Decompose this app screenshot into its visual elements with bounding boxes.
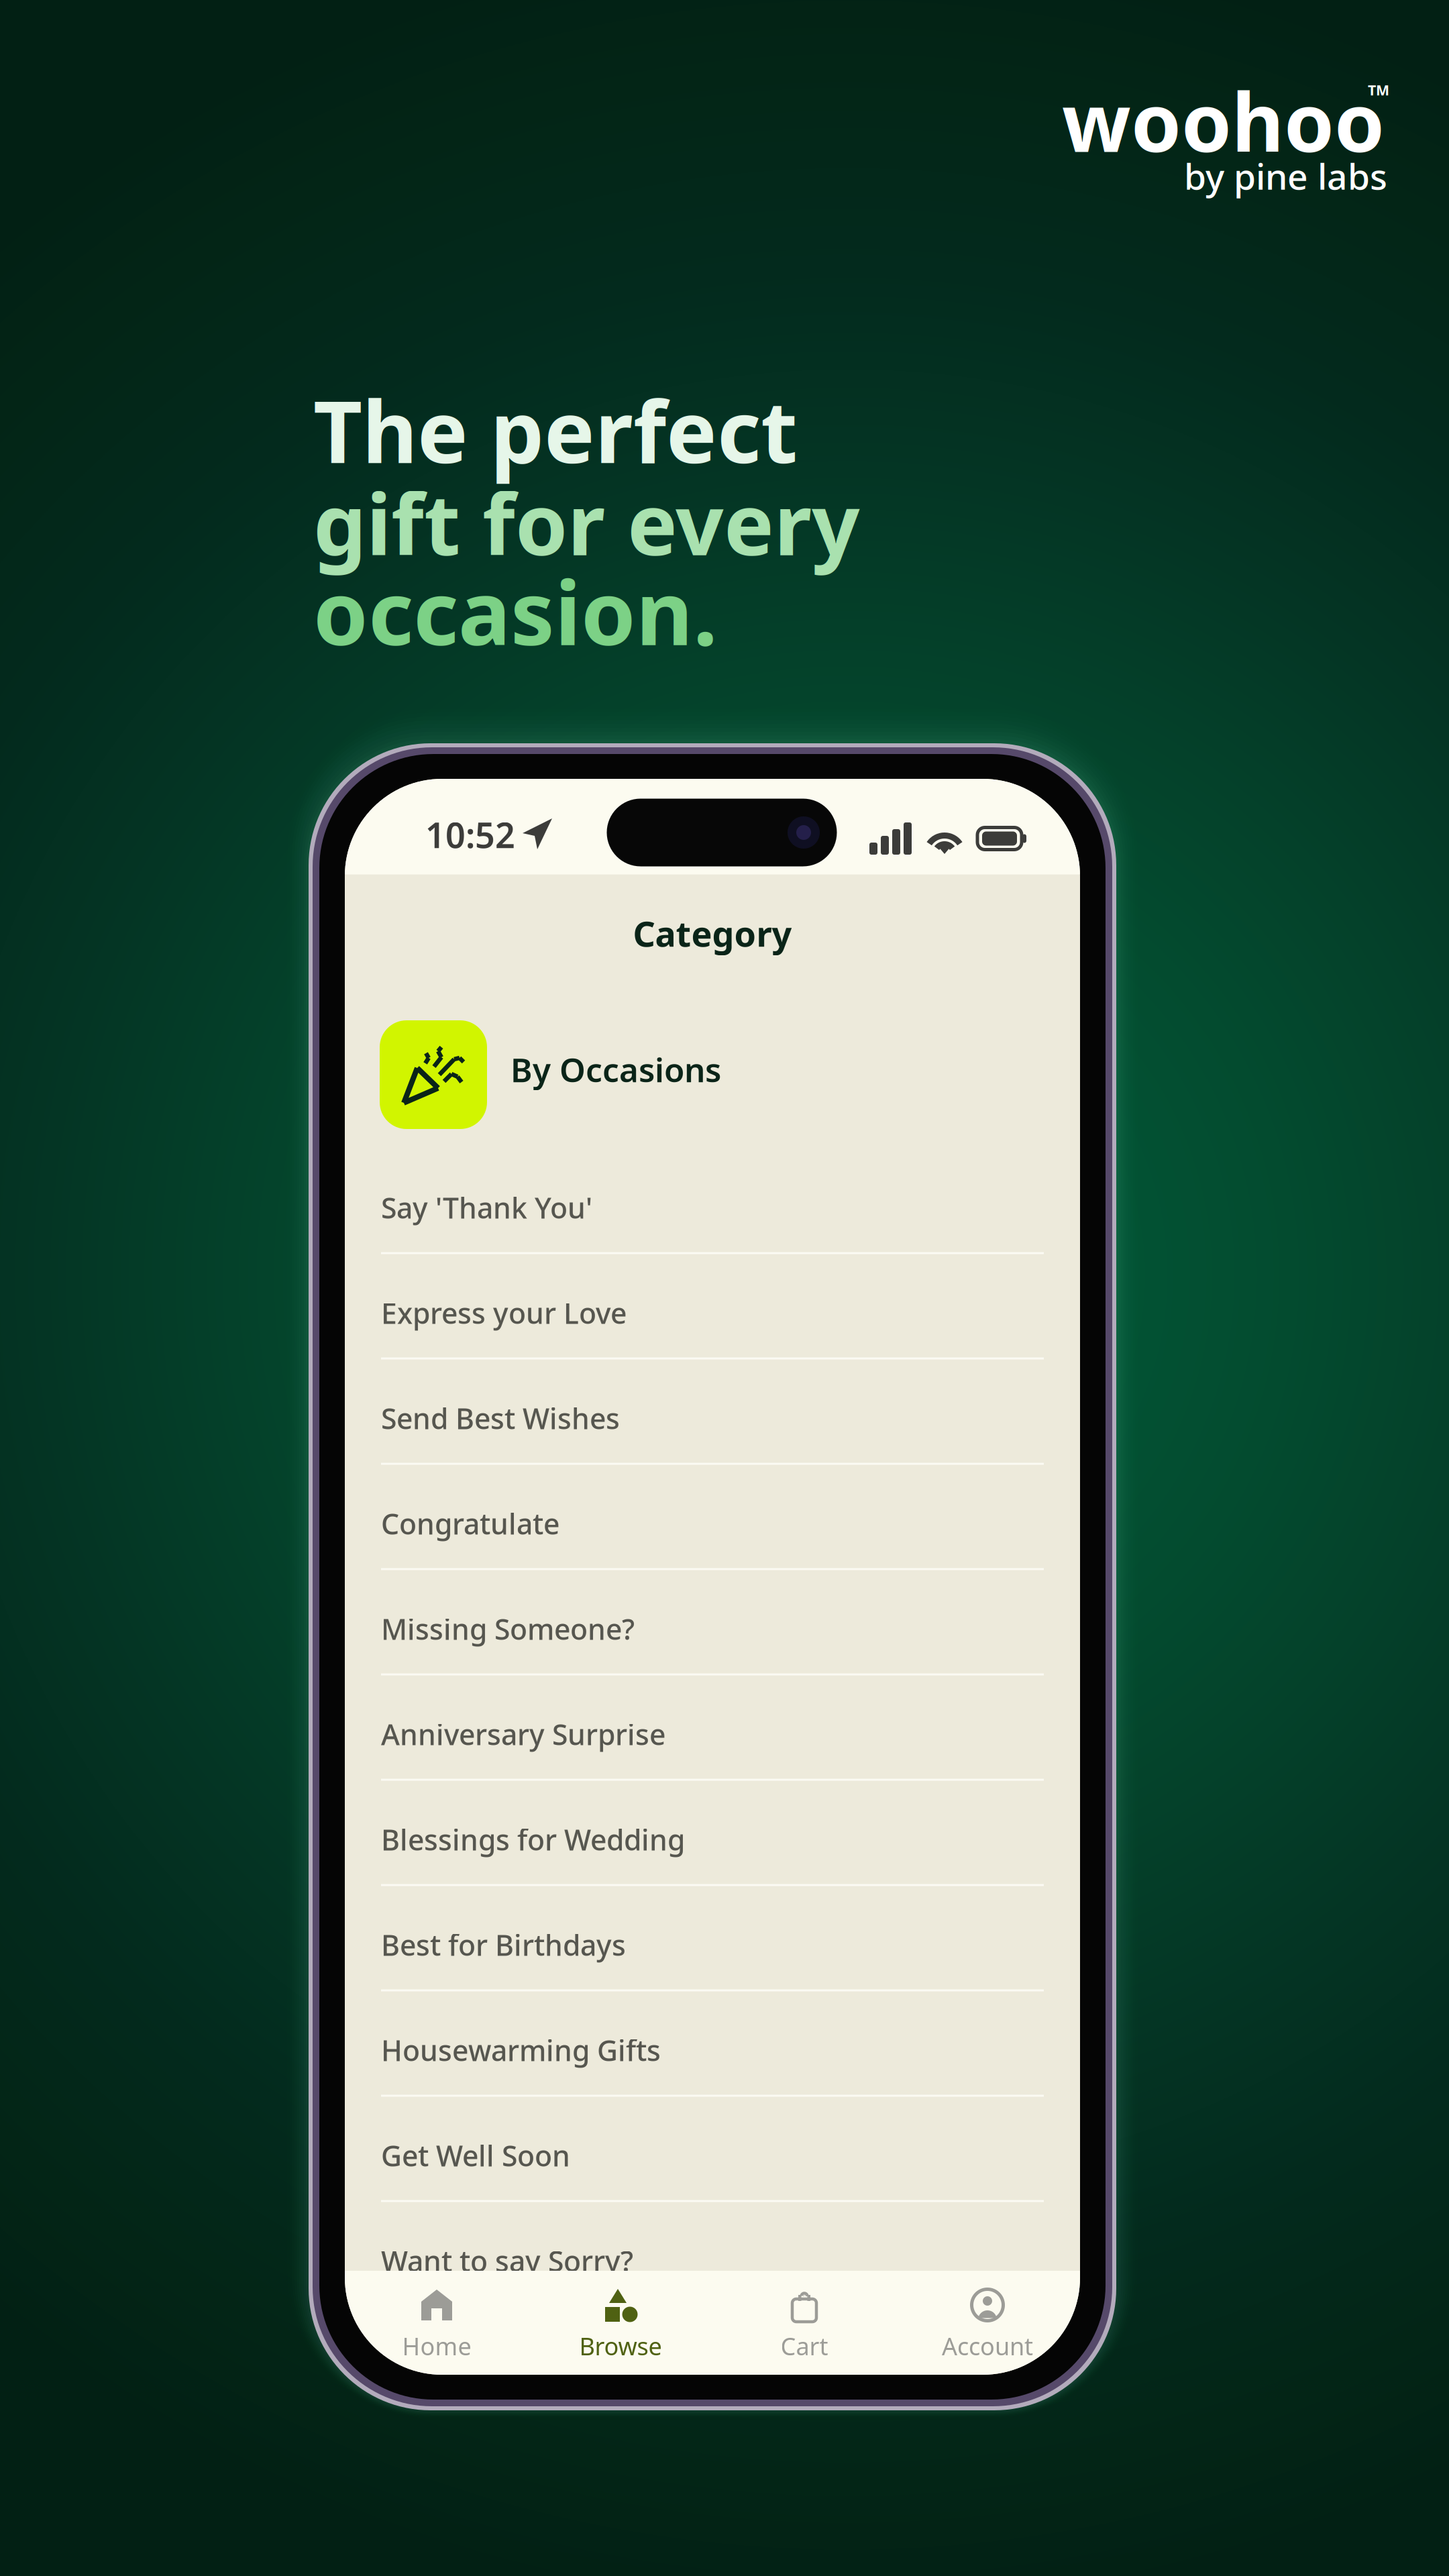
staticText: Category — [633, 910, 792, 956]
button[interactable]: Want to say Sorry? — [345, 779, 1080, 2375]
button[interactable]: Home — [345, 779, 1080, 2375]
staticText: by pine labs — [1184, 152, 1387, 200]
button[interactable]: Best for Birthdays — [345, 779, 1080, 2375]
staticText: Housewarming Gifts — [381, 2031, 661, 2069]
staticText: Want to say Sorry? — [381, 2242, 633, 2280]
button[interactable]: Congratulate — [345, 779, 1080, 2375]
button[interactable]: Anniversary Surprise — [345, 779, 1080, 2375]
staticText: Send Best Wishes — [381, 1399, 620, 1437]
staticText: gift for every — [313, 467, 860, 578]
staticText: Express your Love — [381, 1294, 627, 1332]
button[interactable]: Cart — [345, 779, 1080, 2375]
staticText: Account — [942, 2330, 1033, 2362]
staticText: Say 'Thank You' — [381, 1189, 592, 1227]
staticText: Browse — [579, 2330, 662, 2362]
staticText: 10:52 — [425, 811, 515, 858]
staticText: By Occasions — [511, 1047, 721, 1091]
button[interactable]: Missing Someone? — [345, 779, 1080, 2375]
staticText: Get Well Soon — [381, 2136, 570, 2174]
button[interactable]: Browse — [345, 779, 1080, 2375]
button[interactable]: Housewarming Gifts — [345, 779, 1080, 2375]
button[interactable]: Get Well Soon — [345, 779, 1080, 2375]
staticText: TM — [1368, 80, 1389, 99]
staticText: Anniversary Surprise — [381, 1715, 665, 1753]
staticText: Best for Birthdays — [381, 1926, 626, 1964]
button[interactable]: Account — [345, 779, 1080, 2375]
staticText: The perfect — [313, 374, 798, 486]
button[interactable]: Blessings for Wedding — [345, 779, 1080, 2375]
button[interactable]: By Occasions — [345, 779, 1080, 2375]
button[interactable]: Send Best Wishes — [345, 779, 1080, 2375]
button[interactable]: Say 'Thank You' — [345, 779, 1080, 2375]
staticText: Congratulate — [381, 1504, 559, 1543]
staticText: occasion. — [313, 553, 718, 669]
button[interactable]: Express your Love — [345, 779, 1080, 2375]
staticText: Cart — [781, 2330, 828, 2362]
staticText: woohoo — [1062, 67, 1385, 174]
staticText: Missing Someone? — [381, 1610, 635, 1648]
staticText: Blessings for Wedding — [381, 1820, 685, 1858]
staticText: Home — [402, 2330, 471, 2362]
